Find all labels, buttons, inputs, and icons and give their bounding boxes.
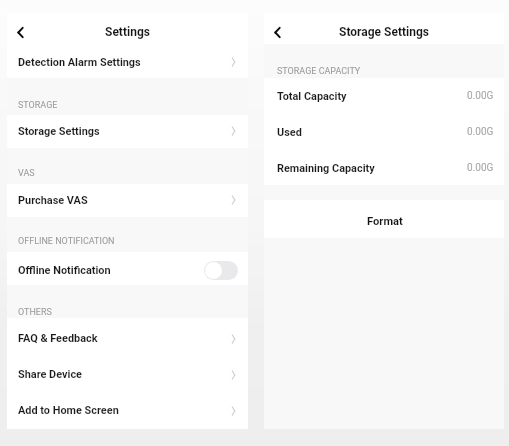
- staticText: Storage Settings: [339, 25, 429, 39]
- button[interactable]: Back: [7, 19, 33, 45]
- staticText: STORAGE: [18, 100, 58, 111]
- staticText: 0.00G: [467, 126, 494, 138]
- staticText: FAQ & Feedback: [18, 332, 98, 345]
- staticText: OFFLINE NOTIFICATION: [18, 236, 115, 247]
- button[interactable]: Share Device: [7, 355, 248, 392]
- button[interactable]: Detection Alarm Settings: [7, 44, 248, 78]
- staticText: Add to Home Screen: [18, 404, 119, 417]
- staticText: Format: [367, 215, 403, 228]
- staticText: VAS: [18, 168, 35, 179]
- button[interactable]: Purchase VAS: [7, 184, 248, 216]
- button[interactable]: Format: [264, 200, 504, 238]
- button[interactable]: Storage Settings: [7, 115, 248, 149]
- staticText: 0.00G: [467, 90, 494, 102]
- staticText: 0.00G: [467, 162, 494, 174]
- button[interactable]: Offline Notification toggle: [204, 261, 238, 280]
- button[interactable]: FAQ & Feedback: [7, 318, 248, 355]
- staticText: Remaining Capacity: [277, 162, 375, 175]
- staticText: OTHERS: [18, 307, 52, 318]
- staticText: Purchase VAS: [18, 194, 88, 207]
- button[interactable]: Add to Home Screen: [7, 392, 248, 429]
- staticText: Storage Settings: [18, 125, 100, 138]
- staticText: Share Device: [18, 368, 82, 381]
- button[interactable]: Back: [264, 19, 290, 45]
- staticText: STORAGE CAPACITY: [277, 66, 361, 77]
- staticText: Detection Alarm Settings: [18, 56, 141, 69]
- staticText: Settings: [105, 25, 150, 39]
- staticText: Total Capacity: [277, 90, 347, 103]
- staticText: Offline Notification: [18, 264, 111, 277]
- staticText: Used: [277, 126, 302, 139]
- button[interactable]: Offline Notification: [7, 252, 248, 285]
